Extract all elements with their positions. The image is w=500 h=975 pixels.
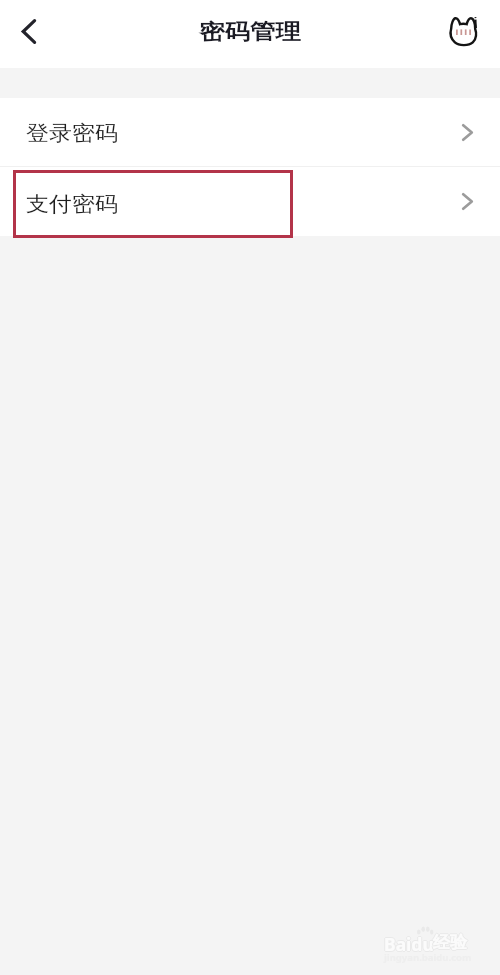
staticText: 经验 (432, 932, 466, 953)
staticText: 经验 (434, 932, 468, 953)
staticText: Baidu (384, 932, 434, 956)
button[interactable]: 支付密码 (0, 167, 500, 236)
staticText: Baidu (384, 931, 434, 955)
staticText: 登录密码 (26, 120, 118, 146)
button[interactable]: Back (7, 8, 51, 52)
staticText: 支付密码 (26, 191, 118, 217)
staticText: Baidu (385, 932, 435, 956)
staticText: 经验 (433, 933, 467, 954)
staticText: Baidu (383, 932, 433, 956)
button[interactable]: 登录密码 (0, 98, 500, 166)
staticText: 密码管理 (199, 18, 301, 45)
staticText: Baidu (384, 933, 434, 957)
staticText: 经验 (433, 931, 467, 952)
staticText: 经验 (433, 932, 467, 953)
button[interactable]: Tmall (446, 12, 480, 46)
